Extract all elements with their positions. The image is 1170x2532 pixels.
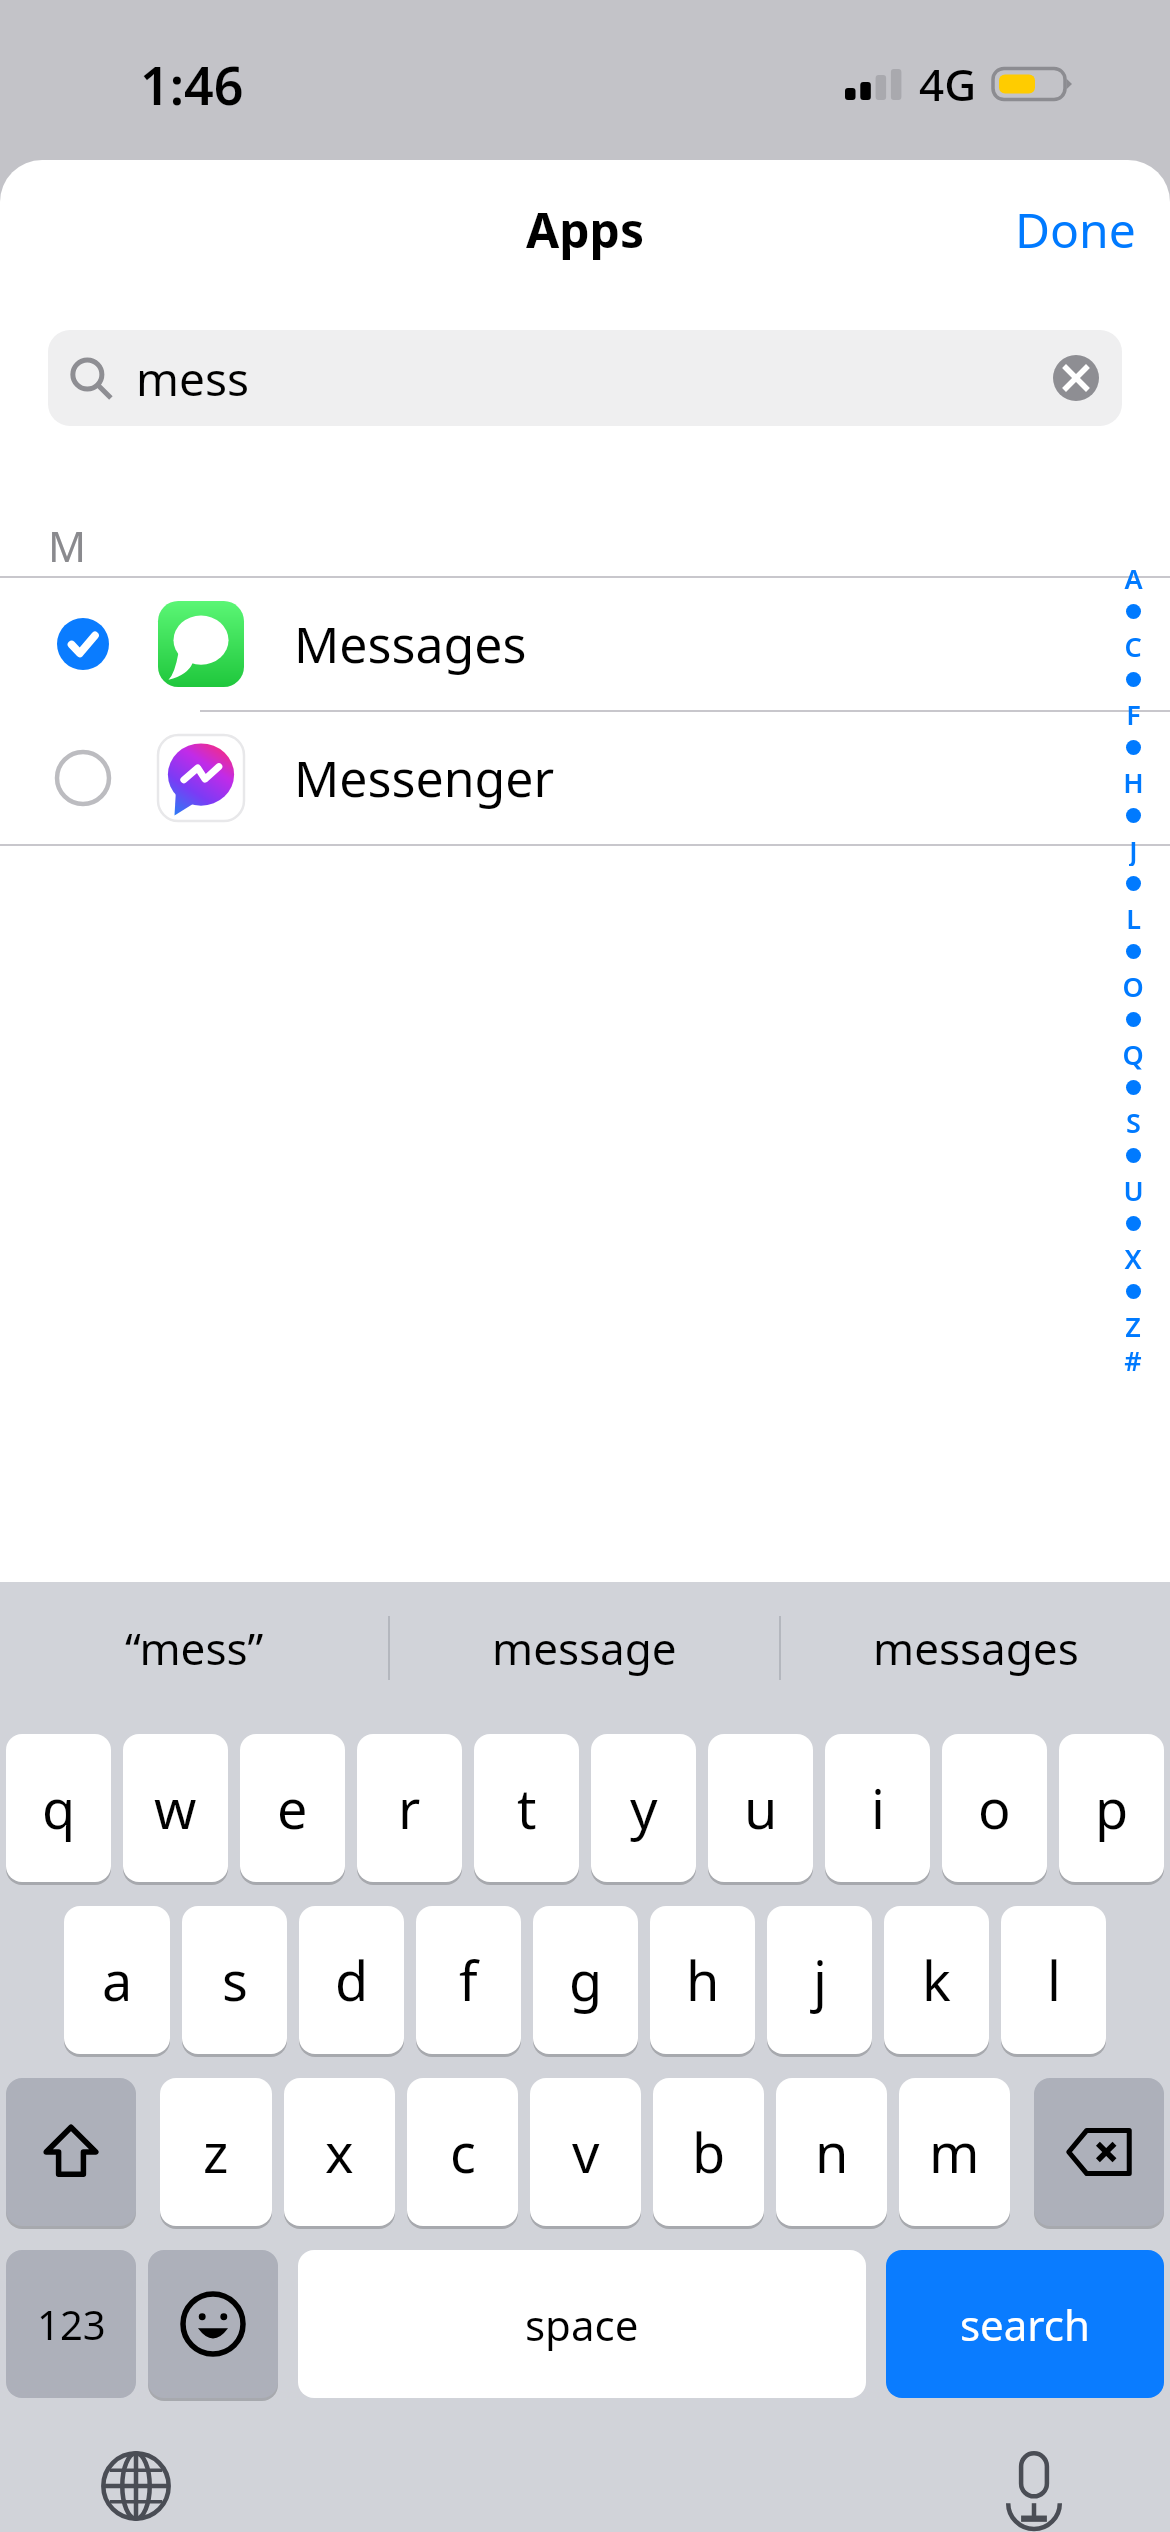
staticText: O	[1122, 968, 1144, 1002]
staticText: l	[1047, 1943, 1061, 2017]
button[interactable]: z	[160, 2078, 272, 2226]
staticText: Apps	[526, 197, 644, 262]
button[interactable]: j	[767, 1906, 872, 2054]
staticText: o	[978, 1771, 1011, 1845]
button[interactable]: “mess”	[0, 1582, 388, 1714]
button[interactable]: h	[650, 1906, 755, 2054]
staticText: messages	[873, 1618, 1079, 1678]
staticText: 4G	[919, 54, 977, 114]
staticText: v	[572, 2115, 600, 2189]
button[interactable]: r	[357, 1734, 462, 1882]
button[interactable]: t	[474, 1734, 579, 1882]
staticText: L	[1126, 900, 1141, 934]
button[interactable]: n	[776, 2078, 887, 2226]
button[interactable]: k	[884, 1906, 989, 2054]
staticText: r	[398, 1771, 421, 1845]
button[interactable]: Messages	[0, 578, 1170, 710]
staticText: F	[1126, 696, 1141, 730]
button[interactable]: search	[886, 2250, 1164, 2398]
button[interactable]: Done	[981, 183, 1170, 276]
button[interactable]: Messenger	[0, 712, 1170, 844]
staticText: search	[960, 2296, 1090, 2353]
staticText: Q	[1122, 1036, 1144, 1070]
staticText: d	[335, 1943, 369, 2017]
staticText: Z	[1125, 1308, 1141, 1342]
staticText: M	[48, 517, 87, 574]
button[interactable]: mess	[48, 330, 1122, 426]
staticText: w	[154, 1771, 197, 1845]
button[interactable]: a	[64, 1906, 170, 2054]
button[interactable]: u	[708, 1734, 813, 1882]
button[interactable]: g	[533, 1906, 638, 2054]
staticText: U	[1123, 1172, 1144, 1206]
staticText: J	[1129, 832, 1138, 866]
button[interactable]: messages	[781, 1582, 1170, 1714]
staticText: e	[277, 1771, 308, 1845]
button[interactable]: s	[182, 1906, 287, 2054]
staticText: j	[813, 1943, 827, 2017]
staticText: i	[871, 1771, 885, 1845]
staticText: message	[492, 1618, 677, 1678]
staticText: Done	[1015, 197, 1136, 262]
button[interactable]: i	[825, 1734, 930, 1882]
staticText: f	[459, 1943, 478, 2017]
staticText: u	[744, 1771, 778, 1845]
button[interactable]: w	[123, 1734, 228, 1882]
button[interactable]: d	[299, 1906, 404, 2054]
button[interactable]: v	[530, 2078, 641, 2226]
staticText: a	[102, 1943, 133, 2017]
staticText: “mess”	[125, 1618, 264, 1678]
staticText: m	[929, 2115, 980, 2189]
button[interactable]: message	[390, 1582, 779, 1714]
staticText: y	[630, 1771, 658, 1845]
staticText: z	[203, 2115, 229, 2189]
button[interactable]: space	[298, 2250, 866, 2398]
button[interactable]: Emoji	[148, 2250, 278, 2398]
button[interactable]: Shift	[6, 2078, 136, 2226]
staticText: 123	[37, 2297, 106, 2351]
button[interactable]: Clear text	[1040, 342, 1112, 414]
button[interactable]: f	[416, 1906, 521, 2054]
staticText: H	[1123, 764, 1144, 798]
button[interactable]: Switch keyboard language	[88, 2440, 184, 2532]
button[interactable]: Alphabet index	[1110, 560, 1156, 1376]
staticText: c	[450, 2115, 476, 2189]
staticText: t	[517, 1771, 537, 1845]
button[interactable]: Backspace	[1034, 2078, 1164, 2226]
staticText: Messages	[294, 610, 527, 678]
staticText: X	[1124, 1240, 1142, 1274]
staticText: S	[1126, 1104, 1141, 1138]
staticText: mess	[136, 347, 250, 410]
staticText: 1:46	[140, 49, 244, 120]
button[interactable]: q	[6, 1734, 111, 1882]
staticText: #	[1124, 1342, 1142, 1376]
staticText: q	[42, 1771, 76, 1845]
staticText: k	[922, 1943, 951, 2017]
staticText: h	[686, 1943, 720, 2017]
button[interactable]: y	[591, 1734, 696, 1882]
button[interactable]: o	[942, 1734, 1047, 1882]
button[interactable]: b	[653, 2078, 764, 2226]
button[interactable]: l	[1001, 1906, 1106, 2054]
button[interactable]: m	[899, 2078, 1010, 2226]
staticText: n	[815, 2115, 849, 2189]
staticText: x	[325, 2115, 354, 2189]
staticText: space	[525, 2296, 639, 2353]
staticText: p	[1095, 1771, 1129, 1845]
staticText: Messenger	[294, 744, 555, 812]
staticText: b	[692, 2115, 726, 2189]
button[interactable]: x	[284, 2078, 395, 2226]
staticText: C	[1124, 628, 1142, 662]
button[interactable]: c	[407, 2078, 518, 2226]
staticText: g	[569, 1943, 603, 2017]
button[interactable]: e	[240, 1734, 345, 1882]
button[interactable]: p	[1059, 1734, 1164, 1882]
button[interactable]: 123	[6, 2250, 136, 2398]
staticText: A	[1124, 560, 1143, 594]
button[interactable]: Dictation	[986, 2440, 1082, 2532]
staticText: s	[222, 1943, 248, 2017]
